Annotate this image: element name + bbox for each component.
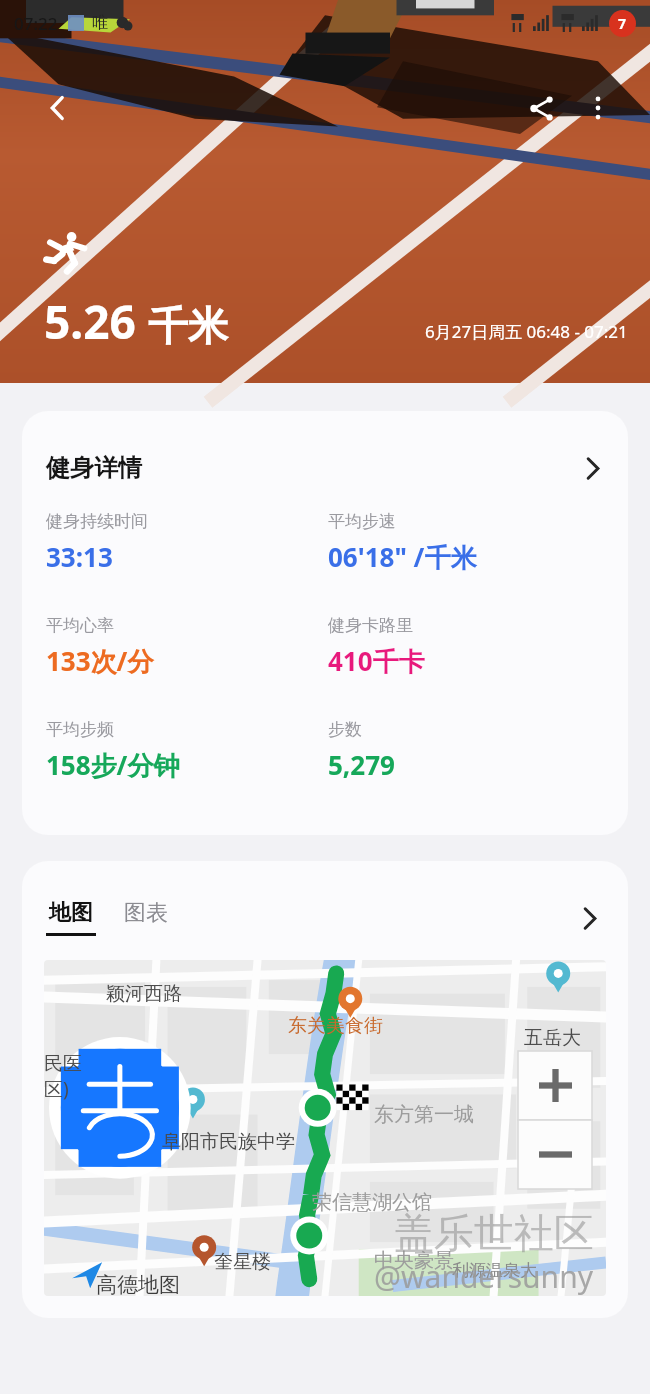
staticText: 健身详情 [46,453,142,483]
staticText: 盖乐世社区 [394,1208,594,1258]
button[interactable]: Zoom out [518,1120,592,1189]
staticText: 图表 [124,899,168,927]
staticText: 区) [44,1076,69,1102]
staticText: 5,279 [328,747,395,782]
staticText: 07:22 [14,12,58,35]
staticText: 民医 [44,1052,82,1076]
button[interactable]: Open map [572,901,606,935]
staticText: 东方第一城 [374,1102,474,1127]
staticText: @wandersunny [374,1256,593,1296]
button[interactable]: Back [34,84,82,132]
button[interactable]: Share [517,84,565,132]
staticText: 东关美食街 [288,1014,383,1038]
button[interactable]: 地图 [46,899,96,936]
staticText: 平均心率 [46,615,114,636]
staticText: 中央豪景 [374,1248,454,1273]
staticText: 利源温泉大 [452,1260,537,1281]
staticText: 千米 [148,301,228,351]
staticText: 唯 [92,13,108,33]
button[interactable]: 图表 [124,899,168,936]
staticText: 133次/分 [46,643,154,679]
staticText: 6月27日周五 06:48 - 07:21 [425,320,628,343]
staticText: 步数 [328,719,362,740]
button[interactable]: More options [574,84,622,132]
staticText: 5.26 [44,290,136,353]
staticText: 颖河西路 [106,982,182,1006]
staticText: 33:13 [46,539,113,574]
staticText: 地图 [49,899,93,927]
staticText: 健身持续时间 [46,511,148,532]
staticText: 平均步频 [46,719,114,740]
staticText: 平均步速 [328,511,396,532]
staticText: 06'18" /千米 [328,539,477,575]
staticText: 健身卡路里 [328,615,413,636]
button[interactable]: 健身详情 [22,411,628,511]
button[interactable]: Zoom in [518,1051,592,1120]
staticText: 五岳大 [524,1026,581,1050]
staticText: 高德地图 [96,1272,180,1296]
staticText: 158步/分钟 [46,747,180,783]
staticText: 阜阳市民族中学 [162,1130,295,1154]
staticText: 7 [618,14,627,33]
staticText: 荣信慧湖公馆 [312,1190,432,1215]
staticText: 410千卡 [328,643,425,679]
staticText: 奎星楼 [214,1250,271,1274]
